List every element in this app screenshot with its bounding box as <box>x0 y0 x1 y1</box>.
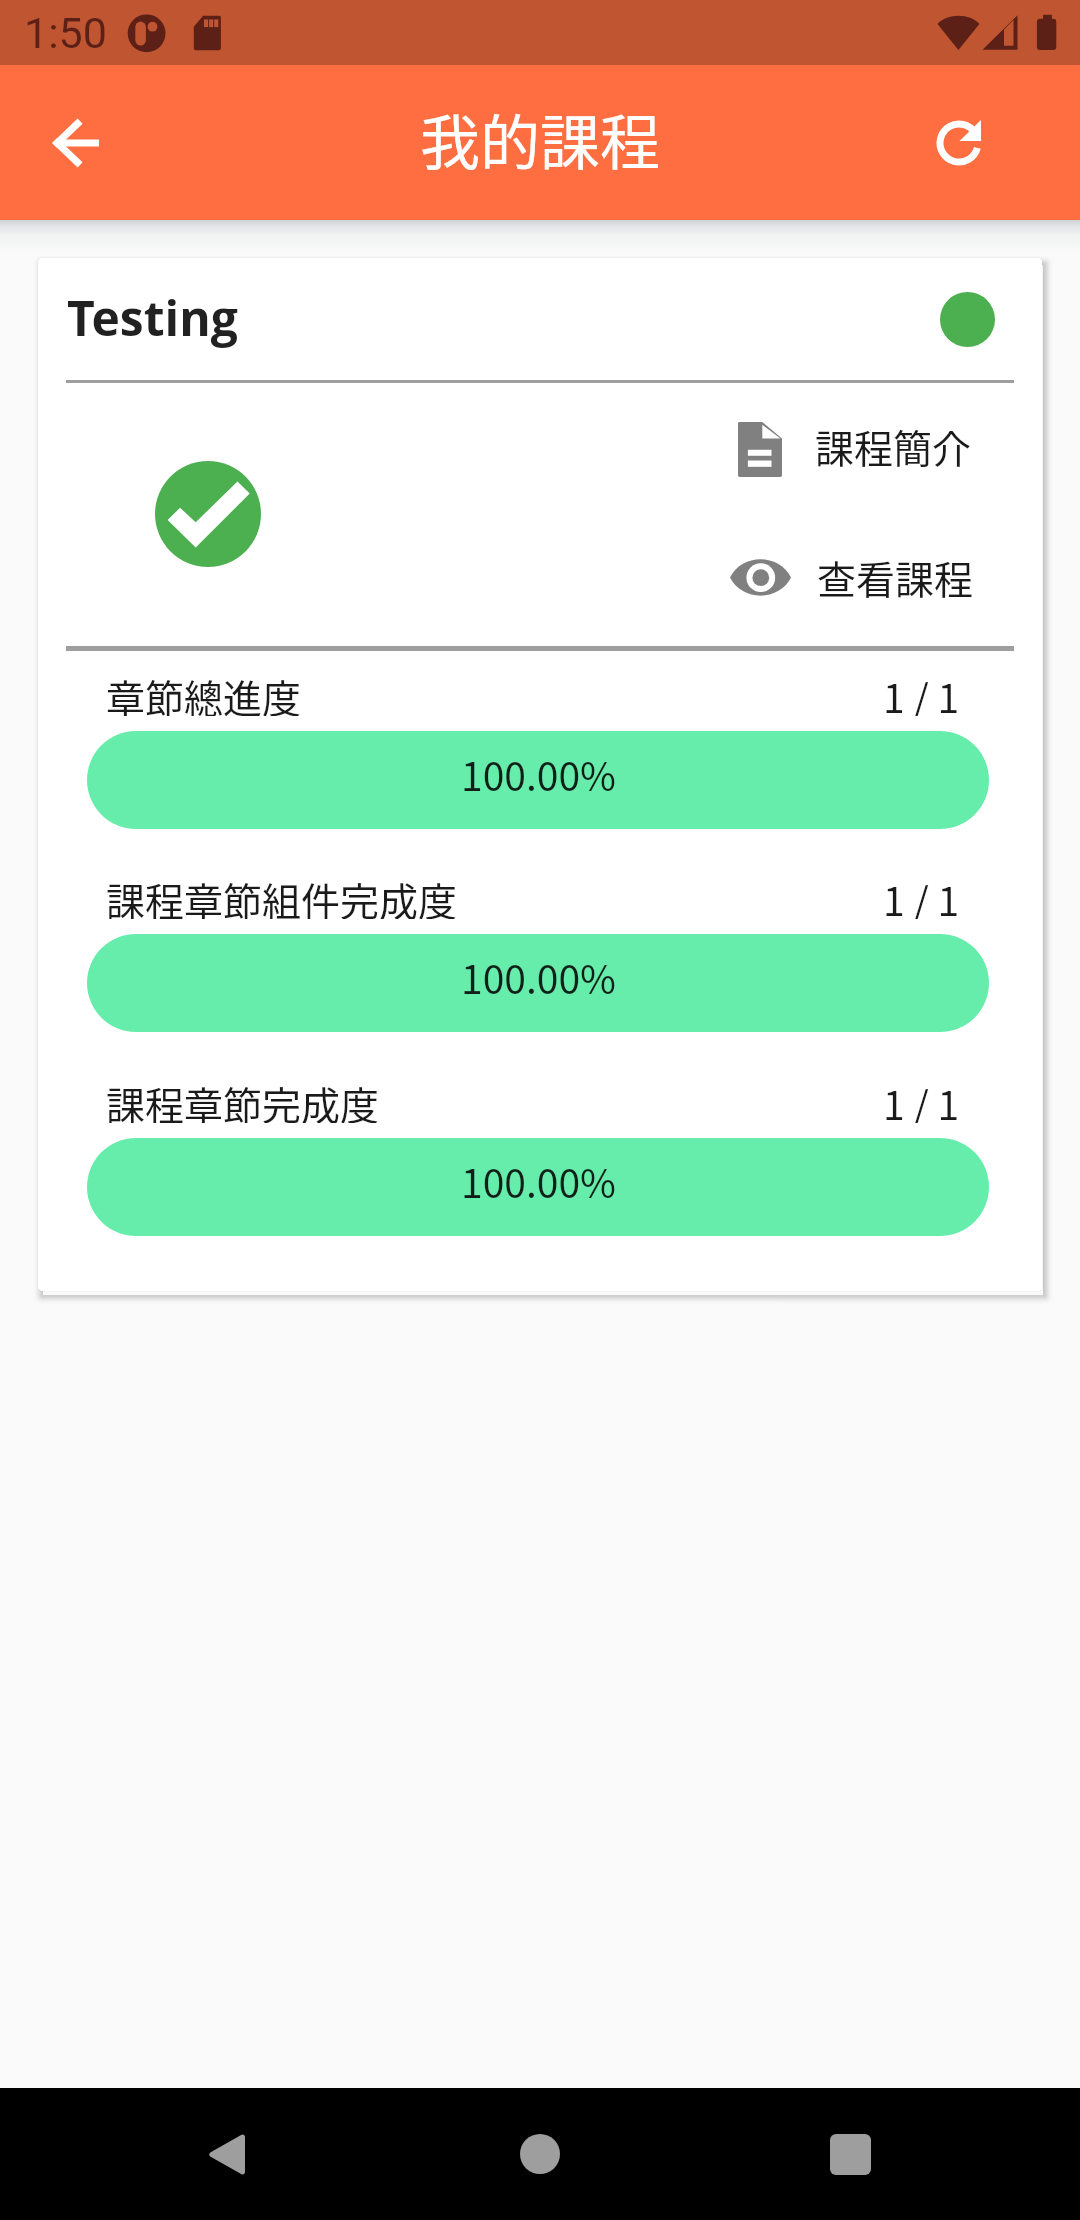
button[interactable]: Back <box>22 88 132 198</box>
staticText: 1 / 1 <box>883 668 960 716</box>
button[interactable]: 課程簡介 <box>701 407 972 485</box>
staticText: 課程章節完成度 <box>106 1075 380 1123</box>
staticText: 章節總進度 <box>106 668 302 716</box>
button[interactable]: Back <box>160 2088 292 2220</box>
staticText: 查看課程 <box>817 549 974 605</box>
staticText: 100.00% <box>461 1153 616 1209</box>
staticText: 100.00% <box>461 949 616 1005</box>
button[interactable]: Recents <box>784 2088 916 2220</box>
staticText: 1 / 1 <box>883 871 960 919</box>
button[interactable]: Testing <box>38 258 1042 1291</box>
staticText: Testing <box>67 285 238 350</box>
staticText: 1 / 1 <box>883 1075 960 1123</box>
staticText: 1:50 <box>24 8 107 58</box>
button[interactable]: 查看課程 <box>699 538 974 616</box>
button[interactable]: Home <box>474 2088 606 2220</box>
staticText: 我的課程 <box>420 95 660 182</box>
staticText: 課程簡介 <box>815 418 972 474</box>
staticText: 100.00% <box>461 746 616 802</box>
button[interactable]: Refresh <box>904 88 1014 198</box>
staticText: 課程章節組件完成度 <box>106 871 458 919</box>
